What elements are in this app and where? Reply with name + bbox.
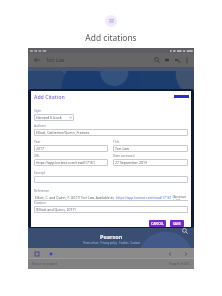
button[interactable]: 2017 — [36, 145, 106, 152]
staticText: 27 September 2019 — [115, 160, 147, 165]
button[interactable]: Previous page — [165, 249, 174, 258]
button[interactable]: Search in book — [180, 226, 189, 235]
staticText: CANCEL — [151, 221, 164, 226]
staticText: Year — [34, 140, 41, 144]
staticText: Add citations — [0, 32, 222, 43]
button[interactable]: Back — [32, 55, 42, 65]
staticText: (Elliott and Quinn, 2017) — [36, 207, 76, 212]
staticText: Authors — [34, 124, 46, 128]
button[interactable]: SAVE — [170, 220, 184, 227]
staticText: Elliott, C. and Quinn, F. (2017) Tort La… — [35, 195, 116, 199]
staticText: Style — [34, 109, 42, 113]
staticText: Tort Law — [46, 57, 65, 63]
button[interactable]: Elliott, Catherine/Quinn, Frances — [36, 129, 186, 136]
button[interactable]: Tort Law — [115, 145, 186, 152]
button[interactable]: Next page — [181, 249, 190, 258]
staticText: Date accessed — [113, 154, 135, 158]
staticText: https://app.kortext.com/read/17161 — [36, 160, 96, 165]
button[interactable]: 27 September 2019 — [115, 159, 186, 166]
staticText: Pearson — [100, 233, 123, 240]
staticText: Elliott, Catherine/Quinn, Frances — [36, 130, 90, 135]
button[interactable]: CANCEL — [149, 220, 166, 227]
button[interactable]: Bookmarks — [172, 55, 182, 65]
staticText: 2017 — [36, 146, 45, 151]
staticText: SAVE — [173, 221, 181, 226]
staticText: Excerpt — [34, 171, 46, 175]
staticText: (Accessed: 27 Septemb — [172, 194, 187, 200]
staticText: Page 8 of 457 — [169, 262, 190, 266]
button[interactable]: Search — [152, 55, 162, 65]
button[interactable]: More options — [182, 56, 191, 65]
staticText: Tort Law — [115, 146, 129, 151]
staticText: Citation — [34, 201, 46, 205]
button[interactable]: Return to page 4 — [32, 262, 58, 266]
button[interactable]: Highlight — [46, 249, 55, 258]
button[interactable]: (Elliott and Quinn, 2017) — [36, 206, 186, 213]
staticText: Harvard E-book — [36, 115, 62, 120]
button[interactable]: https://app.kortext.com/read/17161 — [36, 159, 106, 166]
staticText: Title — [113, 140, 120, 144]
button[interactable]: https://app.kortext.com/read/17161 — [116, 195, 172, 199]
button[interactable] — [36, 176, 186, 183]
staticText: Reference — [34, 189, 50, 193]
staticText: Terms of use Privacy policy Cookies Cont… — [83, 241, 140, 245]
button[interactable]: Contents — [162, 55, 172, 65]
staticText: URL — [34, 154, 40, 158]
button[interactable]: Harvard E-book — [36, 114, 72, 121]
button[interactable]: Bookmark — [32, 249, 41, 258]
staticText: Add Citation — [34, 93, 65, 100]
